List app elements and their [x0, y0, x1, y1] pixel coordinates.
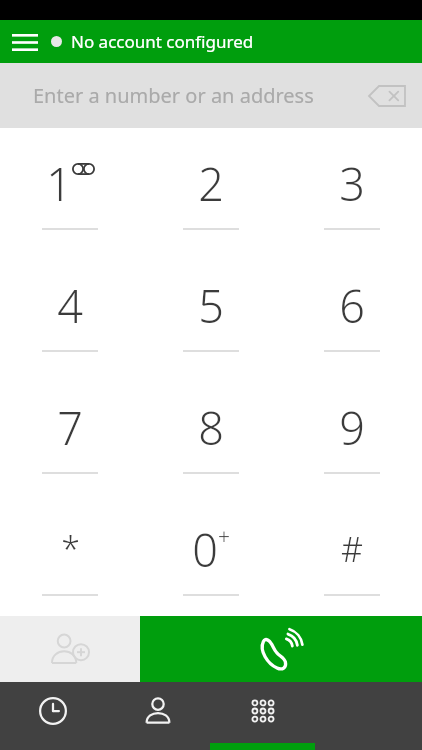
staticText: 5	[198, 275, 224, 336]
button[interactable]: 6	[281, 250, 422, 372]
staticText: 6	[339, 275, 365, 336]
staticText: *	[61, 526, 80, 572]
button[interactable]: Call	[140, 616, 422, 682]
button[interactable]: Dialpad	[210, 682, 315, 750]
button[interactable]: 5	[140, 250, 281, 372]
button[interactable]: 9	[281, 372, 422, 494]
button[interactable]: Menu	[6, 23, 44, 61]
button[interactable]: 2	[140, 128, 281, 250]
staticText: 0	[192, 519, 218, 580]
staticText: +	[218, 523, 230, 552]
button[interactable]: 3	[281, 128, 422, 250]
staticText: Enter a number or an address	[33, 82, 314, 109]
button[interactable]: Enter a number or an address	[0, 63, 422, 128]
button[interactable]: 4	[0, 250, 140, 372]
staticText: 8	[198, 397, 224, 458]
button[interactable]: Add contact	[0, 616, 140, 682]
button[interactable]: 1	[0, 128, 140, 250]
staticText: 2	[198, 153, 224, 214]
staticText: 7	[57, 397, 83, 458]
staticText: 3	[339, 153, 365, 214]
button[interactable]: *	[0, 494, 140, 616]
staticText: #	[341, 526, 363, 572]
button[interactable]: 0	[140, 494, 281, 616]
staticText: 1	[46, 153, 72, 214]
button[interactable]: Recent call history	[0, 682, 105, 750]
button[interactable]: Contacts	[105, 682, 210, 750]
button[interactable]: 8	[140, 372, 281, 494]
button[interactable]: #	[281, 494, 422, 616]
staticText: 9	[339, 397, 365, 458]
staticText: 4	[57, 275, 83, 336]
button[interactable]: 7	[0, 372, 140, 494]
button[interactable]: Delete	[362, 75, 412, 117]
staticText: No account configured	[71, 30, 254, 53]
